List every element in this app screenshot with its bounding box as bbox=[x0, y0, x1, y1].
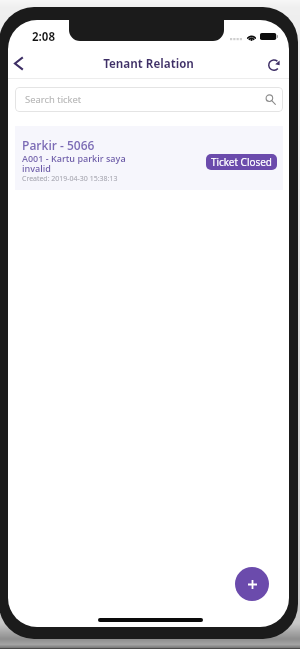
staticText: Parkir - 5066 bbox=[22, 137, 95, 153]
staticText: 2:08 bbox=[32, 29, 55, 45]
staticText: Tenant Relation bbox=[8, 56, 289, 72]
button[interactable]: Back bbox=[8, 52, 29, 74]
button[interactable]: Parkir - 5066 bbox=[15, 126, 283, 190]
staticText: Created: 2019-04-30 15:38:13 bbox=[22, 174, 118, 184]
button[interactable]: Add ticket bbox=[235, 567, 269, 601]
staticText: Search ticket bbox=[25, 93, 82, 106]
button[interactable]: Ticket Closed bbox=[206, 154, 277, 170]
button[interactable]: Search ticket bbox=[15, 87, 283, 112]
staticText: A001 - Kartu parkir saya invalid bbox=[22, 152, 134, 174]
staticText: Ticket Closed bbox=[211, 155, 272, 169]
button[interactable]: Refresh bbox=[263, 53, 285, 75]
